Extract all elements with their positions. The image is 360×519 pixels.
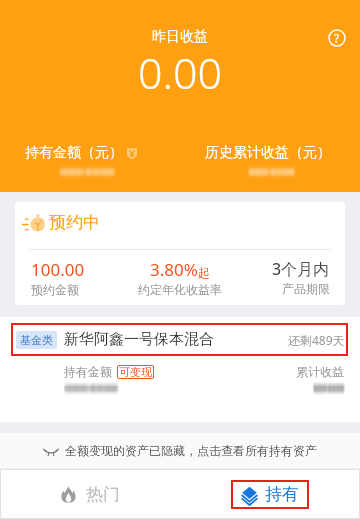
staticText: 昨日收益 (152, 28, 208, 46)
button[interactable]: Toggle amount visibility (126, 147, 138, 159)
staticText: 100.00 (31, 258, 85, 281)
button[interactable]: 基金类 (0, 317, 360, 422)
staticText: 持有金额（元） (25, 144, 123, 162)
staticText: 累计收益 (296, 364, 344, 379)
staticText: 历史累计收益（元） (205, 144, 331, 162)
staticText: 还剩489天 (288, 332, 345, 348)
staticText: 起 (198, 265, 210, 280)
staticText: 全额变现的资产已隐藏，点击查看所有持有资产 (65, 443, 317, 458)
button[interactable]: 持有 (231, 480, 309, 509)
staticText: 持有 (265, 484, 299, 505)
button[interactable]: 热门 (0, 469, 180, 519)
button[interactable]: Help (328, 29, 346, 47)
staticText: 预约金额 (31, 282, 79, 297)
staticText: 产品期限 (282, 281, 330, 296)
staticText: 可变现 (119, 365, 152, 379)
staticText: 约定年化收益率 (138, 282, 222, 297)
staticText: 3个月内 (272, 258, 330, 280)
staticText: 新华阿鑫一号保本混合 (64, 330, 214, 349)
staticText: 持有金额 (64, 364, 112, 379)
button[interactable]: 全额变现的资产已隐藏，点击查看所有持有资产 (0, 433, 360, 468)
staticText: 热门 (86, 484, 120, 505)
staticText: ? (334, 30, 340, 46)
staticText: 基金类 (20, 333, 53, 347)
button[interactable]: 预约中 (15, 202, 345, 305)
staticText: 3.80% (150, 258, 198, 281)
staticText: 预约中 (49, 212, 100, 233)
staticText: 0.00 (138, 43, 223, 102)
